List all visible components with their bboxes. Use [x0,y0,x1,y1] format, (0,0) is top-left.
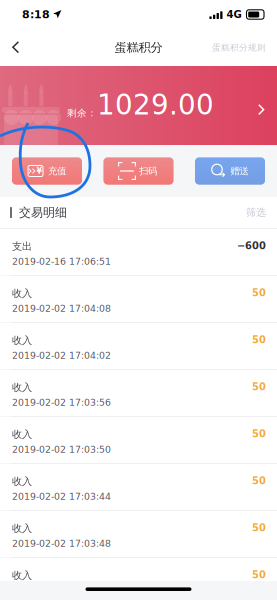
staticText: 收入 [12,569,32,582]
staticText: 4G [226,9,241,20]
button[interactable]: 蛋糕积分规则 [202,29,277,65]
button[interactable]: 收入 [0,370,277,417]
button[interactable]: 支出 [0,229,277,276]
staticText: 扫码 [139,165,157,177]
button[interactable]: 收入 [0,323,277,370]
staticText: 收入 [12,334,32,347]
staticText: 筛选 [246,206,266,219]
staticText: 50 [252,287,266,298]
button[interactable]: 扫码 [103,157,173,184]
staticText: 2019-02-16 17:06:51 [12,256,111,267]
staticText: 2019-02-02 17:03:44 [12,491,111,502]
staticText: 收入 [12,475,32,488]
button[interactable]: 收入 [0,511,277,558]
staticText: ¥ [37,166,43,176]
staticText: 赠送 [230,165,248,177]
staticText: 蛋糕积分规则 [212,42,266,53]
staticText: 2019-02-02 17:03:50 [12,444,111,455]
staticText: 1029.00 [97,89,214,121]
button[interactable]: 收入 [0,276,277,323]
staticText: 50 [252,381,266,392]
staticText: 收入 [12,522,32,535]
staticText: 收入 [12,287,32,300]
staticText: 支出 [12,240,32,253]
staticText: 2019-02-02 17:03:48 [12,538,111,549]
staticText: 8:18 [22,8,50,21]
button[interactable]: 筛选 [236,197,276,228]
staticText: 剩余： [67,107,97,119]
staticText: 2019-02-02 17:04:08 [12,303,111,314]
button[interactable]: 返回 [0,29,34,65]
button[interactable]: 赠送 [195,157,265,184]
staticText: 收入 [12,428,32,441]
staticText: 50 [252,428,266,439]
button[interactable]: 收入 [0,464,277,511]
staticText: 50 [252,522,266,533]
button[interactable]: 收入 [0,417,277,464]
staticText: 2019-02-02 17:03:56 [12,397,111,408]
staticText: 50 [252,569,266,580]
staticText: 交易明细 [19,205,67,220]
staticText: −600 [237,240,266,251]
staticText: 蛋糕积分 [114,40,162,55]
staticText: 50 [252,334,266,345]
staticText: 收入 [12,381,32,394]
button[interactable]: ¥ [12,157,82,184]
staticText: 充值 [48,165,66,177]
staticText: 50 [252,475,266,486]
staticText: 2019-02-02 17:04:02 [12,350,111,361]
